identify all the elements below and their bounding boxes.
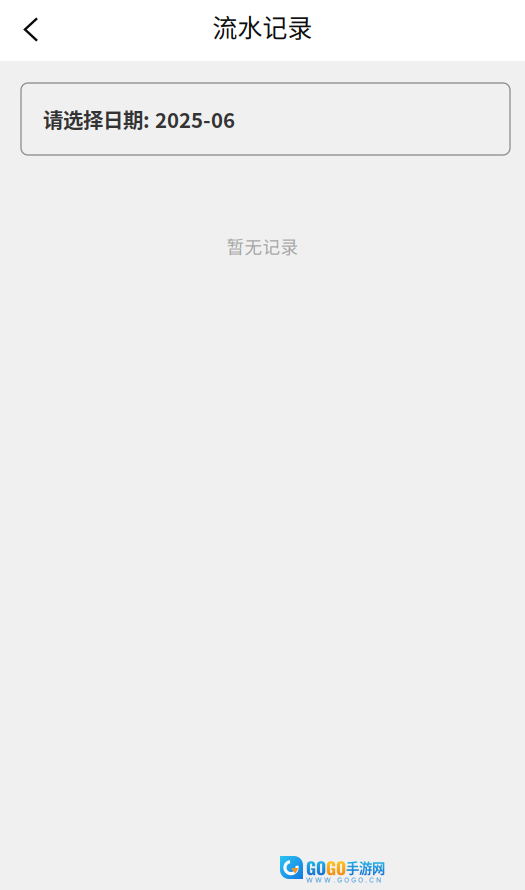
staticText: 暂无记录 <box>226 233 298 258</box>
staticText: 流水记录 <box>212 8 312 44</box>
staticText: W W W . G O G O . C N <box>306 876 381 884</box>
button[interactable]: 请选择日期: 2025-06 <box>21 83 510 155</box>
button[interactable]: Back <box>0 0 60 61</box>
staticText: 请选择日期: 2025-06 <box>43 104 235 134</box>
